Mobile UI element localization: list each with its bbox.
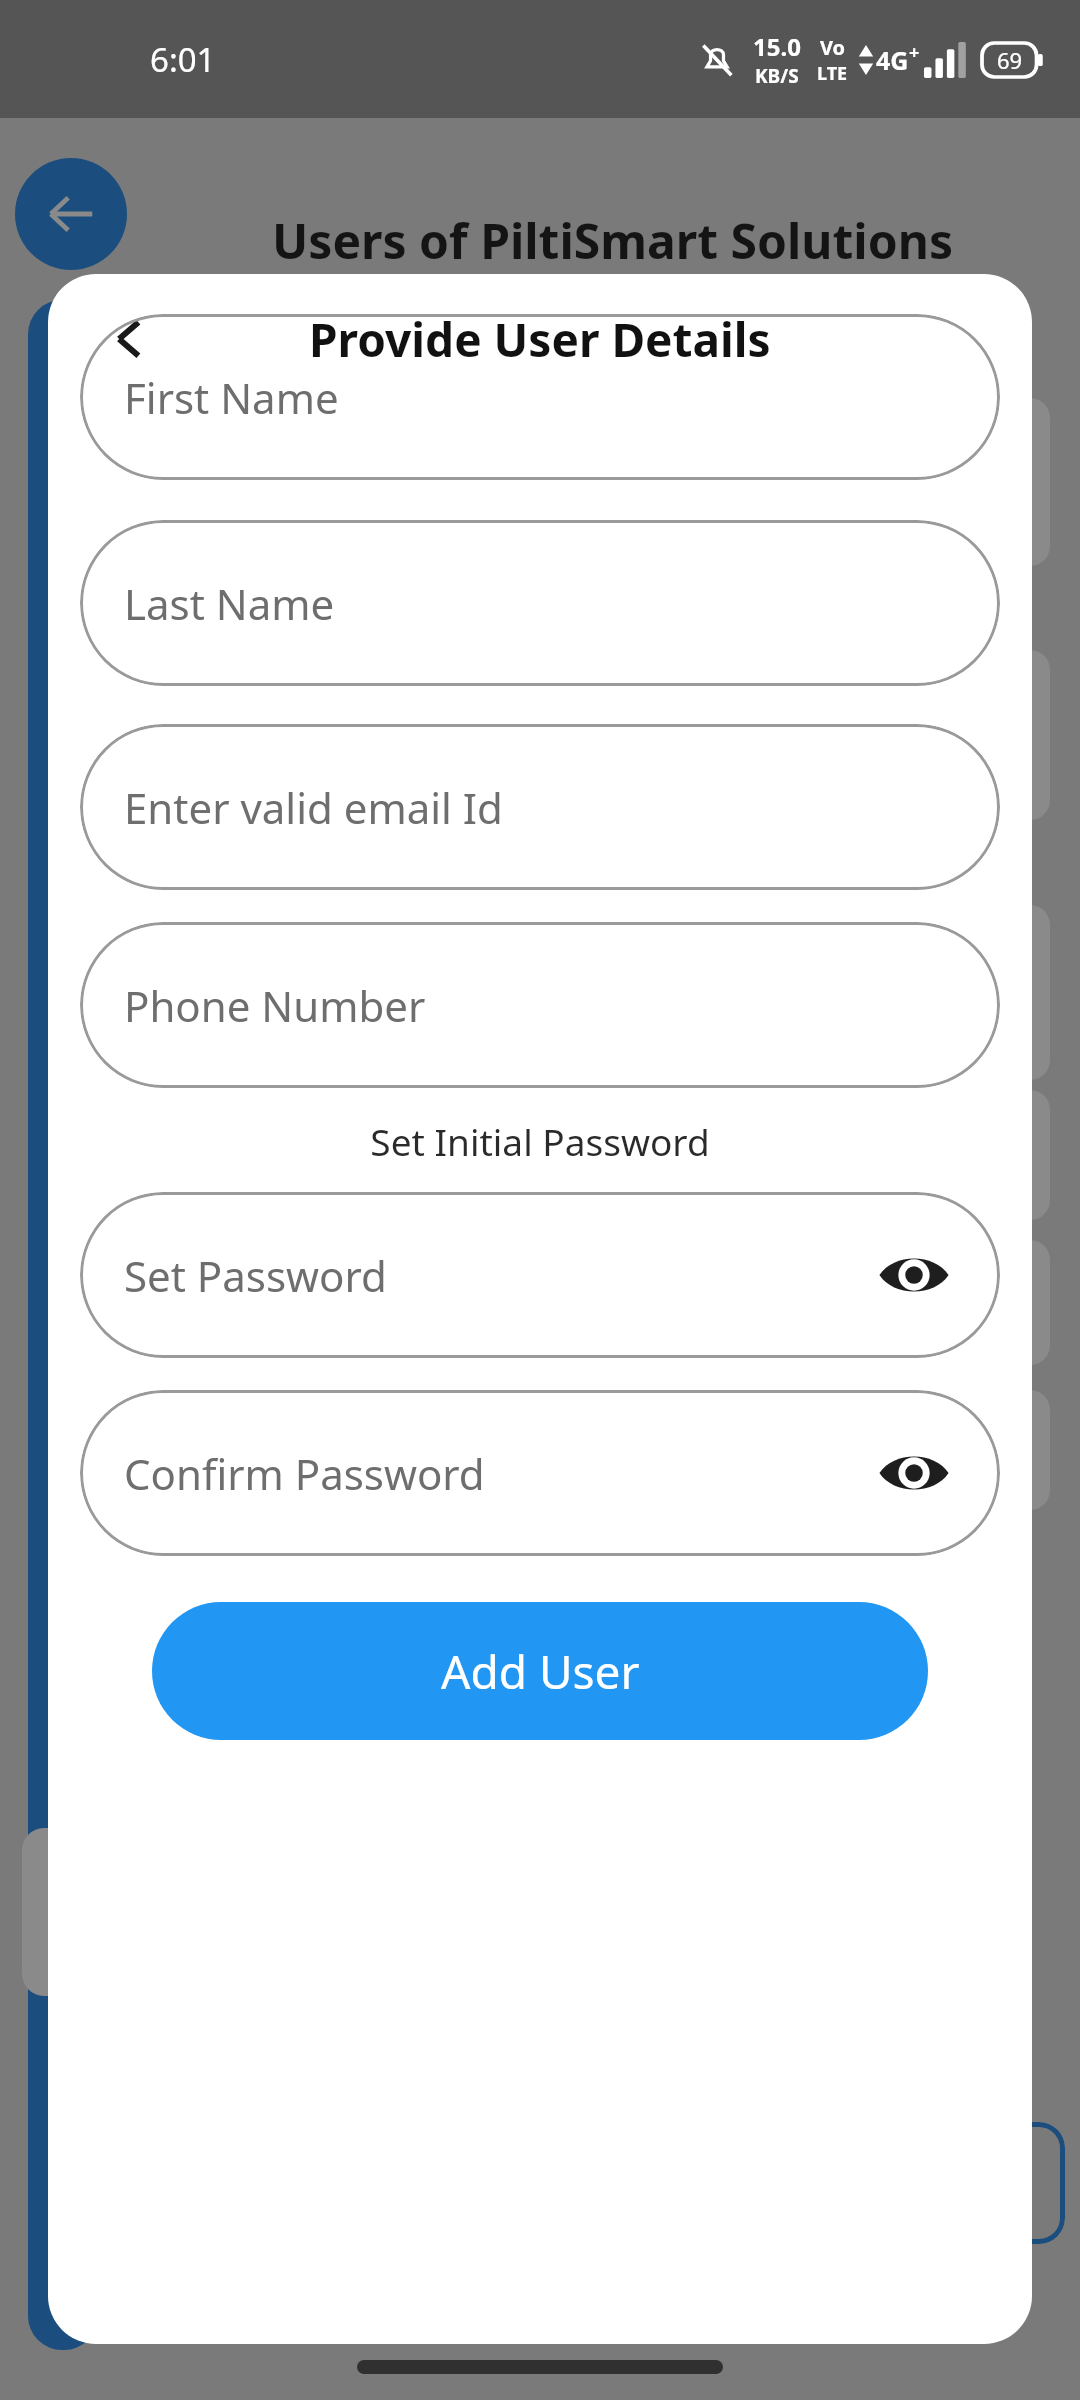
staticText: Enter valid email Id [124,779,503,836]
staticText: First Name [124,369,339,426]
button[interactable]: First Name [80,314,1000,480]
staticText: KB/S [755,63,799,89]
staticText: LTE [817,61,848,86]
staticText: 15.0 [753,30,801,63]
button[interactable]: Set Password [80,1192,1000,1358]
staticText: Add User [441,1640,640,1703]
staticText: 69 [997,45,1023,75]
button[interactable]: Phone Number [80,922,1000,1088]
button[interactable]: Show password [874,1433,954,1513]
button[interactable]: Confirm Password [80,1390,1000,1556]
staticText: Last Name [124,575,335,632]
staticText: 6:01 [150,37,216,82]
button[interactable]: Add User [152,1602,928,1740]
button[interactable]: Back [88,297,172,381]
button[interactable]: Show password [874,1235,954,1315]
button[interactable]: Back [15,158,127,270]
staticText: 4G [876,43,909,77]
staticText: Confirm Password [124,1445,485,1502]
staticText: Provide User Details [309,308,771,371]
button[interactable]: Enter valid email Id [80,724,1000,890]
staticText: Set Password [124,1247,387,1304]
staticText: Users of PiltiSmart Solutions [272,208,953,273]
staticText: Set Initial Password [64,1116,1016,1166]
button[interactable]: Last Name [80,520,1000,686]
staticText: Vo [820,34,846,61]
staticText: Phone Number [124,977,426,1034]
staticText: + [909,40,920,65]
